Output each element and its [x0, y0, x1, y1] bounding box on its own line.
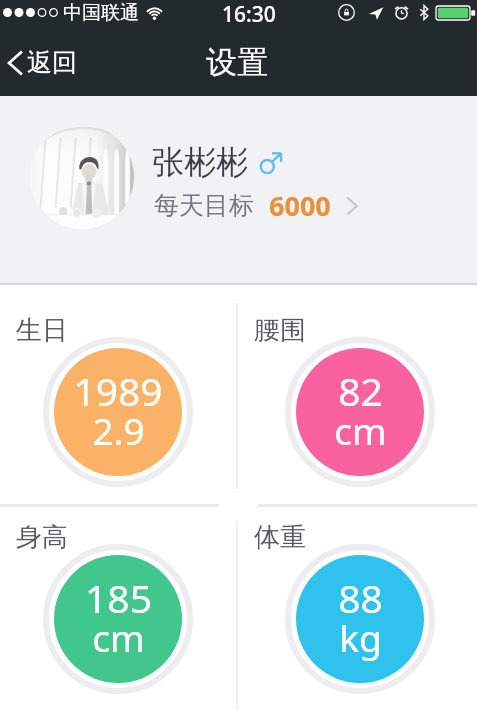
staticText: 生日	[16, 314, 68, 347]
button[interactable]: 返回	[0, 39, 87, 86]
staticText: 体重	[254, 521, 306, 554]
staticText: 88	[338, 571, 383, 624]
staticText: 张彬彬	[152, 142, 248, 182]
button[interactable]: 腰围	[238, 299, 477, 506]
staticText: 身高	[16, 521, 68, 554]
staticText: 1989	[73, 364, 163, 417]
staticText: 设置	[206, 43, 268, 82]
staticText: 6000	[269, 187, 331, 224]
staticText: 腰围	[254, 314, 306, 347]
staticText: 中国联通	[63, 1, 139, 25]
staticText: 185	[85, 571, 152, 624]
button[interactable]: 身高	[0, 506, 239, 710]
staticText: cm	[92, 612, 145, 662]
button[interactable]: 生日	[0, 299, 239, 506]
staticText: 82	[338, 364, 383, 417]
staticText: 16:30	[222, 0, 276, 25]
staticText: 每天目标	[154, 190, 254, 221]
button[interactable]: 张彬彬	[0, 96, 477, 285]
staticText: kg	[339, 612, 382, 662]
staticText: 返回	[27, 47, 77, 78]
staticText: cm	[334, 405, 387, 455]
button[interactable]: 体重	[238, 506, 477, 710]
staticText: 2.9	[92, 405, 145, 455]
